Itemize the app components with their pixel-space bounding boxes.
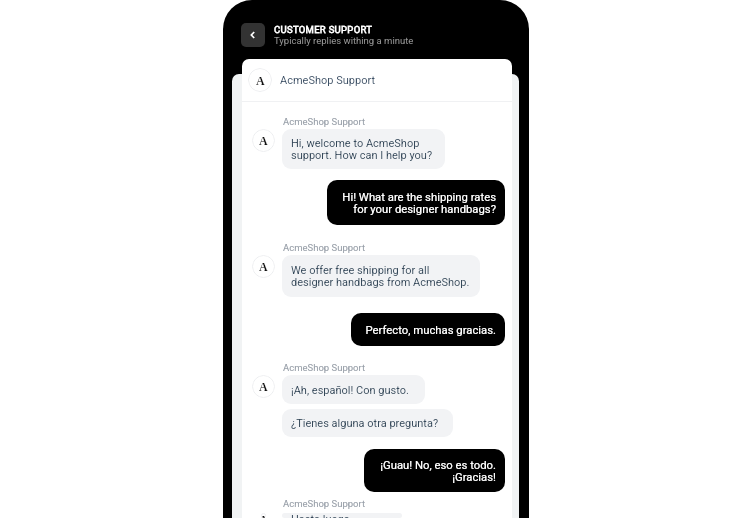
button[interactable]: We offer free shipping for all designer … <box>282 255 480 297</box>
staticText: Hasta luego <box>291 513 350 518</box>
staticText: AcmeShop Support <box>283 242 366 253</box>
staticText: A <box>256 74 265 87</box>
staticText: ¡Ah, español! Con gusto. <box>291 384 409 396</box>
staticText: A <box>259 260 268 273</box>
staticText: AcmeShop Support <box>283 362 366 373</box>
button[interactable]: Hasta luego <box>282 513 402 518</box>
staticText: ¿Tienes alguna otra pregunta? <box>291 417 439 429</box>
staticText: ¡Guau! No, eso es todo. ¡Gracias! <box>380 459 496 483</box>
staticText: A <box>259 380 268 393</box>
button[interactable]: Hi! What are the shipping rates for your… <box>327 180 505 225</box>
button[interactable]: Back <box>241 23 265 47</box>
button[interactable]: Hi, welcome to AcmeShop support. How can… <box>282 129 445 169</box>
button[interactable]: ¡Ah, español! Con gusto. <box>282 375 425 404</box>
staticText: CUSTOMER SUPPORT <box>274 24 373 35</box>
staticText: We offer free shipping for all designer … <box>291 264 470 288</box>
staticText: AcmeShop Support <box>283 498 366 509</box>
staticText: A <box>259 134 268 147</box>
button[interactable]: Perfecto, muchas gracias. <box>351 313 505 346</box>
staticText: Perfecto, muchas gracias. <box>365 324 496 336</box>
staticText: Hi, welcome to AcmeShop support. How can… <box>291 137 433 161</box>
staticText: AcmeShop Support <box>280 74 375 87</box>
staticText: Typically replies withing a minute <box>274 35 414 46</box>
staticText: A <box>259 513 268 518</box>
button[interactable]: ¡Guau! No, eso es todo. ¡Gracias! <box>364 449 505 492</box>
button[interactable]: ¿Tienes alguna otra pregunta? <box>282 409 453 437</box>
staticText: AcmeShop Support <box>283 116 366 127</box>
staticText: Hi! What are the shipping rates for your… <box>342 191 496 215</box>
